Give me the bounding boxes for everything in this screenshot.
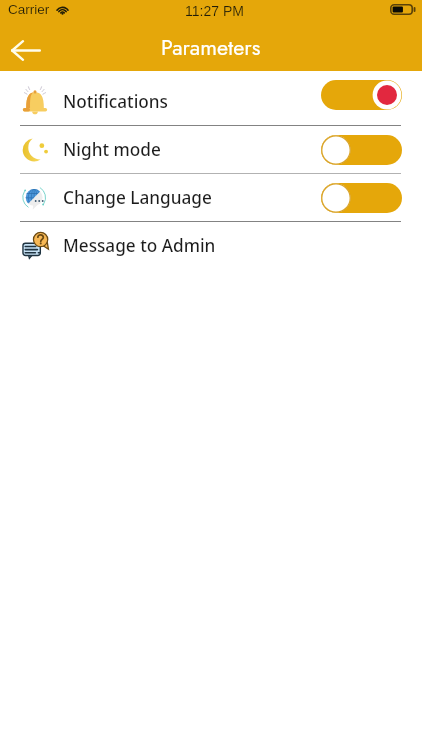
staticText: Carrier xyxy=(8,2,50,17)
staticText: 11:27 PM xyxy=(185,3,244,19)
button[interactable]: Message to Admin xyxy=(0,222,422,269)
staticText: Night mode xyxy=(63,138,161,161)
button[interactable]: Turn on xyxy=(321,183,402,213)
staticText: Message to Admin xyxy=(63,234,216,257)
button[interactable]: Night mode xyxy=(0,126,422,173)
staticText: Parameters xyxy=(161,32,261,63)
button[interactable]: Turn off xyxy=(321,80,402,110)
staticText: Notifications xyxy=(63,90,168,113)
button[interactable]: Back xyxy=(0,26,52,71)
button[interactable]: Turn on xyxy=(321,135,402,165)
button[interactable]: Notifications xyxy=(0,78,422,125)
button[interactable]: Change Language xyxy=(0,174,422,221)
staticText: Change Language xyxy=(63,186,212,209)
